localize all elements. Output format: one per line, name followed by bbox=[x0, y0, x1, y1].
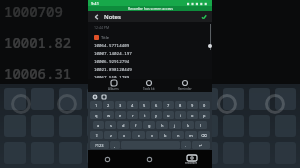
button[interactable]: e bbox=[115, 111, 126, 119]
button[interactable]: . bbox=[181, 141, 191, 149]
staticText: e bbox=[119, 113, 122, 118]
staticText: 10064.57714409 bbox=[94, 43, 130, 49]
staticText: 4 bbox=[131, 103, 134, 108]
button[interactable]: k bbox=[182, 121, 194, 129]
staticText: w bbox=[107, 113, 111, 118]
button[interactable]: y bbox=[151, 111, 162, 119]
staticText: Albums bbox=[108, 87, 119, 91]
staticText: a bbox=[97, 123, 100, 128]
staticText: i bbox=[180, 113, 182, 118]
button[interactable]: ↵ bbox=[192, 141, 210, 149]
button[interactable]: m bbox=[185, 131, 197, 139]
staticText: f bbox=[135, 123, 137, 128]
button[interactable]: r bbox=[127, 111, 138, 119]
button[interactable]: u bbox=[163, 111, 174, 119]
button[interactable]: 5 bbox=[139, 101, 150, 109]
staticText: n bbox=[177, 133, 180, 138]
button[interactable]: 6 bbox=[151, 101, 162, 109]
button[interactable]: Recorder has screen access bbox=[88, 6, 212, 11]
button[interactable]: p bbox=[199, 111, 210, 119]
staticText: 3 bbox=[119, 103, 122, 108]
button[interactable]: Tools kit bbox=[139, 79, 159, 92]
button[interactable]: q bbox=[90, 111, 102, 119]
staticText: 5 bbox=[143, 103, 146, 108]
button[interactable]: t bbox=[139, 111, 150, 119]
staticText: s bbox=[110, 123, 112, 128]
button[interactable]: a bbox=[93, 121, 104, 129]
staticText: ⇧ bbox=[95, 133, 99, 138]
button[interactable]: o bbox=[187, 111, 198, 119]
button[interactable]: Back bbox=[92, 12, 101, 21]
button[interactable]: Albums bbox=[104, 79, 123, 92]
button[interactable]: ⌫ bbox=[198, 131, 210, 139]
button[interactable]: f bbox=[130, 121, 142, 129]
button[interactable]: 1 bbox=[90, 101, 102, 109]
staticText: j bbox=[174, 123, 176, 128]
staticText: ⌫ bbox=[201, 133, 207, 138]
button[interactable]: s bbox=[105, 121, 116, 129]
button[interactable]: c bbox=[132, 131, 145, 139]
staticText: v bbox=[151, 133, 154, 138]
staticText: x bbox=[123, 133, 126, 138]
staticText: t bbox=[144, 113, 146, 118]
button[interactable]: Home bbox=[144, 154, 154, 164]
staticText: 9 bbox=[191, 103, 194, 108]
button[interactable]: 8 bbox=[175, 101, 186, 109]
button[interactable]: , bbox=[110, 141, 120, 149]
staticText: , bbox=[114, 143, 116, 148]
button[interactable]: d bbox=[117, 121, 129, 129]
button[interactable]: 9 bbox=[187, 101, 198, 109]
button[interactable]: l bbox=[195, 121, 207, 129]
staticText: 6 bbox=[155, 103, 158, 108]
button[interactable]: v bbox=[146, 131, 158, 139]
staticText: ↵ bbox=[199, 143, 203, 148]
staticText: Reminder bbox=[178, 87, 192, 91]
staticText: recorder bbox=[185, 161, 198, 165]
button[interactable]: Keyboard settings bbox=[92, 94, 97, 99]
staticText: 10006.31 bbox=[4, 64, 72, 83]
staticText: 12:44 PM bbox=[94, 25, 110, 30]
button[interactable]: j bbox=[169, 121, 181, 129]
button[interactable]: 3 bbox=[115, 101, 126, 109]
button[interactable]: b bbox=[159, 131, 171, 139]
staticText: . bbox=[185, 143, 187, 148]
button[interactable]: g bbox=[143, 121, 155, 129]
staticText: r bbox=[132, 113, 134, 118]
button[interactable]: Save note bbox=[199, 12, 208, 21]
button[interactable]: n bbox=[172, 131, 184, 139]
staticText: Title bbox=[101, 35, 109, 40]
staticText: b bbox=[164, 133, 167, 138]
staticText: g bbox=[148, 123, 151, 128]
staticText: 9:41 bbox=[91, 1, 99, 6]
staticText: ?123 bbox=[95, 143, 104, 148]
staticText: p bbox=[203, 113, 206, 118]
button[interactable]: Stickers bbox=[101, 94, 106, 99]
staticText: Notes bbox=[104, 13, 121, 21]
staticText: 10067.550.1789 bbox=[94, 75, 130, 78]
button[interactable]: 7 bbox=[163, 101, 174, 109]
button[interactable]: ?123 bbox=[90, 141, 109, 149]
staticText: d bbox=[122, 123, 125, 128]
button[interactable]: z bbox=[104, 131, 117, 139]
button[interactable]: 2 bbox=[103, 101, 114, 109]
button[interactable]: x bbox=[118, 131, 131, 139]
staticText: u bbox=[167, 113, 170, 118]
staticText: l bbox=[200, 123, 202, 128]
staticText: 10001.82 bbox=[4, 33, 72, 52]
staticText: 10021.898120449 bbox=[94, 67, 132, 73]
staticText: 1000709 bbox=[4, 2, 63, 21]
button[interactable]: h bbox=[156, 121, 168, 129]
button[interactable]: i bbox=[175, 111, 186, 119]
staticText: o bbox=[191, 113, 194, 118]
button[interactable]: Back bbox=[102, 154, 112, 164]
button[interactable]: Reminder bbox=[174, 79, 196, 92]
button[interactable]: w bbox=[103, 111, 114, 119]
button[interactable]: ⇧ bbox=[90, 131, 103, 139]
button[interactable]: 0 bbox=[199, 101, 210, 109]
staticText: m bbox=[189, 133, 193, 138]
staticText: q bbox=[95, 113, 98, 118]
staticText: 1 bbox=[95, 103, 98, 108]
staticText: Tools kit bbox=[143, 87, 155, 91]
button[interactable]: 4 bbox=[127, 101, 138, 109]
